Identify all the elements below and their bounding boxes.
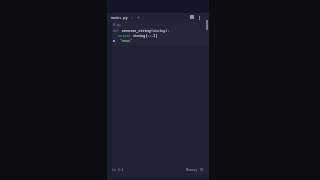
staticText: # py	[113, 22, 122, 27]
staticText: reverse_string	[122, 28, 151, 33]
staticText: ×	[131, 15, 134, 20]
staticText: Memory 7%	[186, 168, 204, 172]
button[interactable]: More options	[197, 15, 202, 20]
button[interactable]: main.py	[111, 15, 128, 20]
staticText: return	[114, 33, 133, 38]
button[interactable]: Run	[190, 15, 194, 19]
button[interactable]: New tab	[136, 15, 141, 20]
staticText: main.py	[111, 15, 128, 20]
staticText: string[::-1]	[133, 33, 158, 38]
staticText: (string):	[151, 28, 170, 33]
button[interactable]: Close tab	[130, 15, 135, 20]
staticText: def	[113, 28, 122, 33]
staticText: +	[137, 15, 140, 20]
staticText: ▸	[116, 38, 119, 43]
staticText: "noon"	[120, 38, 133, 43]
staticText: Ln 4:1	[112, 168, 124, 172]
